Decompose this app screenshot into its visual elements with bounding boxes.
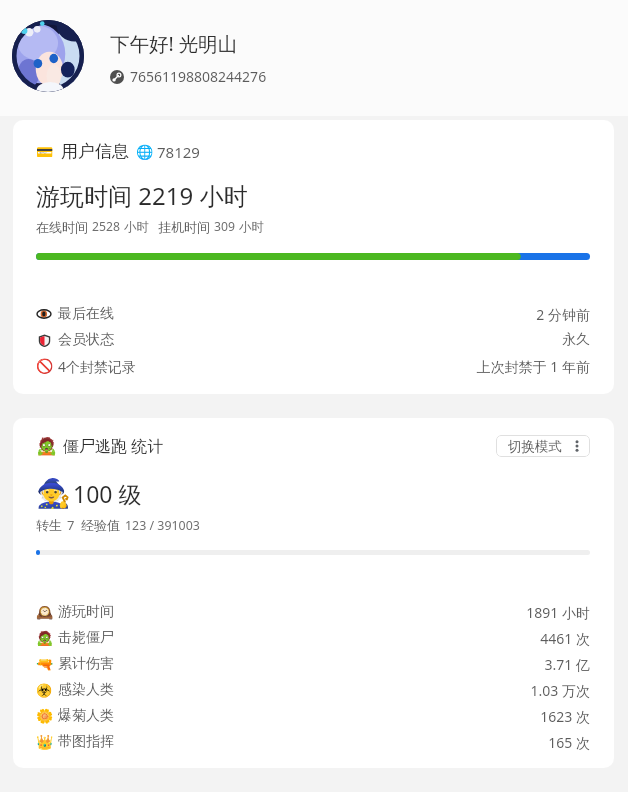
staticText: 🧟	[36, 630, 52, 646]
staticText: 经验值	[81, 517, 120, 533]
other: Steam	[110, 70, 124, 84]
button[interactable]: 🚫	[36, 353, 590, 379]
staticText: 游玩时间	[58, 603, 114, 621]
button[interactable]: 🕰	[36, 599, 590, 625]
staticText: 78129	[157, 142, 200, 162]
staticText: 在线时间	[36, 219, 88, 235]
button[interactable]: 🔫	[36, 651, 590, 677]
staticText: 累计伤害	[58, 655, 114, 673]
staticText: 100 级	[73, 478, 142, 509]
staticText: 🌼	[36, 708, 52, 724]
staticText: 7	[67, 516, 75, 534]
staticText: 🕰	[36, 604, 52, 620]
staticText: 击毙僵尸	[58, 629, 114, 647]
button[interactable]: 切换模式	[496, 435, 590, 457]
staticText: 76561198808244276	[130, 67, 267, 86]
staticText: 1891 小时	[526, 603, 590, 622]
staticText: 1.03 万次	[530, 681, 590, 700]
staticText: 165 次	[548, 733, 590, 752]
button[interactable]: 🧟	[36, 625, 590, 651]
staticText: 🚫	[36, 358, 52, 374]
staticText: 爆菊人类	[58, 707, 114, 725]
staticText: 最后在线	[58, 305, 114, 323]
button[interactable]: 下午好! 光明山	[0, 0, 628, 116]
staticText: 4461 次	[540, 629, 590, 648]
staticText: 带图指挥	[58, 733, 114, 751]
staticText: 💳	[36, 144, 54, 160]
staticText: 👑	[36, 734, 52, 750]
staticText: 123 / 391003	[125, 517, 200, 534]
staticText: 🧟	[36, 436, 58, 456]
staticText: 感染人类	[58, 681, 114, 699]
staticText: 🔫	[36, 656, 52, 672]
button[interactable]: ☣	[36, 677, 590, 703]
staticText: 转生	[36, 517, 62, 533]
staticText: 会员状态	[58, 331, 114, 349]
button[interactable]: 👑	[36, 729, 590, 755]
staticText: 1623 次	[540, 707, 590, 726]
staticText: 游玩时间 2219 小时	[36, 179, 248, 212]
staticText: 2 分钟前	[536, 305, 590, 324]
staticText: 2528	[92, 218, 120, 235]
staticText: 切换模式	[508, 438, 562, 455]
staticText: 永久	[562, 331, 590, 349]
staticText: 挂机时间	[158, 219, 210, 235]
button[interactable]: 会员状态	[36, 327, 590, 353]
staticText: ☣	[36, 683, 52, 698]
staticText: 小时	[124, 219, 150, 235]
staticText: 下午好! 光明山	[110, 30, 238, 57]
staticText: 小时	[239, 219, 265, 235]
button[interactable]: 🌼	[36, 703, 590, 729]
staticText: 僵尸逃跑 统计	[63, 435, 164, 457]
button[interactable]: 最后在线	[36, 301, 590, 327]
staticText: 🌐	[136, 144, 154, 160]
staticText: 309	[214, 218, 235, 235]
staticText: 4个封禁记录	[58, 357, 137, 376]
staticText: 上次封禁于 1 年前	[476, 357, 590, 376]
staticText: 用户信息	[61, 141, 129, 162]
staticText: 3.71 亿	[544, 655, 590, 674]
staticText: 🧙	[36, 477, 71, 509]
